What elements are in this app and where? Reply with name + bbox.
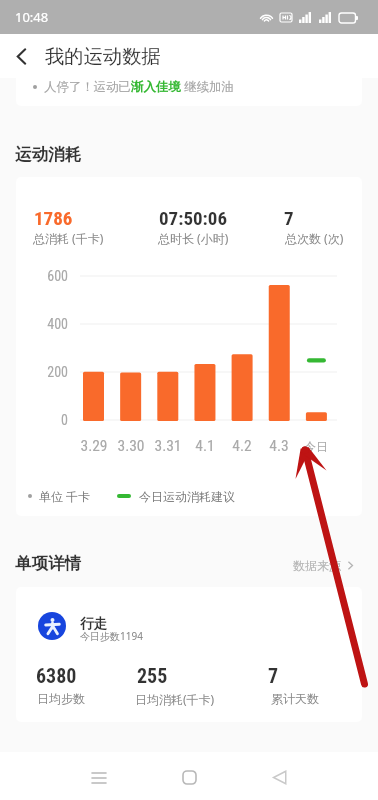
staticText: 3.29	[72, 437, 116, 455]
staticText: 3.31	[146, 437, 190, 455]
staticText: 10:48	[15, 8, 49, 26]
staticText: 4.1	[183, 437, 227, 455]
staticText: 0	[37, 412, 68, 428]
staticText: 数据来源	[293, 558, 341, 573]
staticText: 总次数 (次)	[285, 230, 344, 246]
staticText: 我的运动数据	[45, 44, 161, 68]
button[interactable]: Back	[255, 758, 304, 796]
staticText: 继续加油	[181, 78, 234, 95]
staticText: 行走	[80, 615, 108, 632]
staticText: 7	[268, 664, 279, 687]
staticText: 今日步数1194	[80, 629, 143, 643]
staticText: 1786	[34, 207, 73, 229]
staticText: 6380	[36, 664, 77, 687]
staticText: 7	[284, 207, 294, 229]
staticText: 4.3	[257, 437, 301, 455]
button[interactable]: Back	[0, 35, 42, 77]
button[interactable]: Home	[165, 758, 214, 796]
staticText: 累计天数	[271, 691, 319, 706]
staticText: 日均消耗(千卡)	[135, 691, 215, 707]
staticText: 400	[37, 316, 68, 332]
staticText: 单项详情	[15, 553, 81, 574]
staticText: 200	[37, 364, 68, 380]
staticText: 4.2	[220, 437, 264, 455]
staticText: 600	[37, 268, 68, 284]
staticText: 单位 千卡	[39, 488, 91, 504]
staticText: 人停了！运动已	[44, 79, 131, 95]
staticText: 总消耗 (千卡)	[33, 230, 104, 246]
staticText: 渐入佳境	[131, 79, 181, 95]
button[interactable]: 数据来源	[289, 554, 359, 577]
staticText: 今日运动消耗建议	[139, 489, 235, 504]
staticText: 总时长 (小时)	[158, 230, 229, 246]
staticText: 运动消耗	[15, 144, 81, 165]
staticText: 今日	[294, 439, 338, 454]
staticText: 日均步数	[37, 691, 85, 706]
staticText: 3.30	[109, 437, 153, 455]
button[interactable]: Recent apps	[74, 759, 123, 797]
staticText: 07:50:06	[159, 207, 228, 229]
staticText: 255	[137, 664, 168, 687]
